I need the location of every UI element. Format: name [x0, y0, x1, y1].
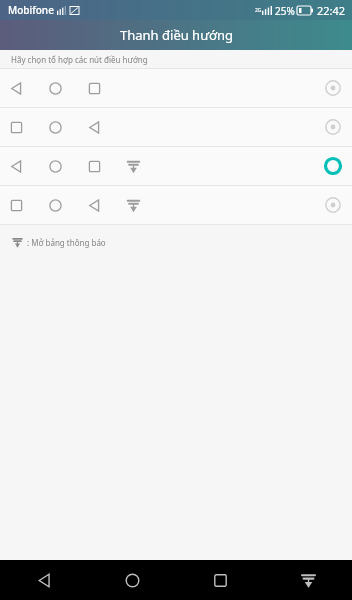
staticText: 25% [275, 4, 295, 18]
button[interactable]: Back [0, 560, 88, 600]
button[interactable]: Recent apps [176, 560, 264, 600]
staticText: Hãy chọn tổ hợp các nút điều hướng [11, 54, 148, 65]
button[interactable]: Home [88, 560, 176, 600]
staticText: 22:42 [317, 3, 346, 18]
staticText: Mobifone [8, 3, 54, 17]
staticText: Thanh điều hướng [120, 26, 233, 44]
button[interactable] [0, 147, 352, 185]
button[interactable] [0, 69, 352, 107]
button[interactable] [0, 186, 352, 224]
staticText: 2G [255, 7, 262, 14]
button[interactable] [0, 108, 352, 146]
staticText: : Mở bảng thông báo [27, 237, 106, 248]
button[interactable]: Notifications [264, 560, 352, 600]
